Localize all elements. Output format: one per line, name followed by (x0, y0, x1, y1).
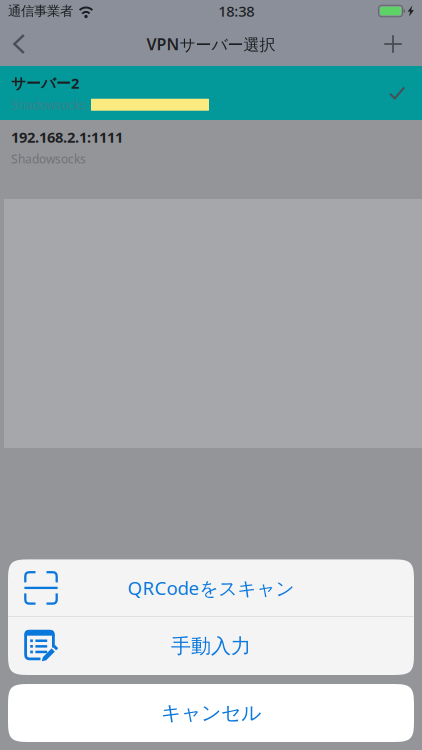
button[interactable]: QRCodeをスキャン (8, 559, 414, 616)
staticText: サーバー2 (11, 73, 79, 93)
staticText: 18:38 (218, 1, 254, 21)
staticText: 手動入力 (171, 634, 251, 658)
staticText: Shadowsocks (11, 97, 86, 113)
button[interactable]: Add server (370, 22, 422, 66)
staticText: VPNサーバー選択 (146, 33, 275, 55)
button[interactable]: 192.168.2.1:1111 (0, 120, 422, 174)
staticText: キャンセル (161, 701, 261, 725)
staticText: Shadowsocks (11, 151, 86, 167)
button[interactable]: サーバー2 (0, 66, 422, 120)
staticText: QRCodeをスキャン (127, 575, 294, 600)
staticText: 通信事業者 (8, 3, 73, 19)
staticText: 192.168.2.1:1111 (11, 127, 123, 147)
button[interactable]: キャンセル (8, 684, 414, 742)
button[interactable]: Back (0, 22, 38, 66)
button[interactable]: 手動入力 (8, 617, 414, 675)
